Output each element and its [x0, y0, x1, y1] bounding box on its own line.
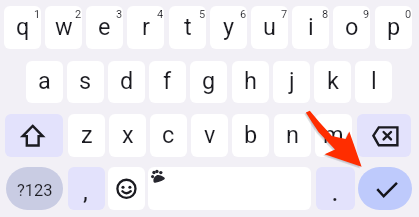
button[interactable]: c — [150, 114, 187, 157]
staticText: y — [223, 13, 235, 41]
staticText: . — [332, 182, 338, 205]
staticText: t — [184, 13, 192, 41]
button[interactable]: Space — [148, 167, 311, 210]
button[interactable]: u — [251, 6, 288, 49]
button[interactable]: Shift — [5, 114, 63, 157]
button[interactable]: h — [232, 61, 269, 103]
button[interactable]: s — [67, 61, 104, 103]
button[interactable]: Backspace — [357, 114, 411, 157]
button[interactable]: d — [108, 61, 145, 103]
staticText: l — [371, 67, 377, 95]
staticText: f — [163, 67, 172, 95]
button[interactable]: p — [375, 6, 412, 49]
button[interactable]: , — [68, 167, 105, 210]
staticText: 1 — [34, 8, 41, 21]
staticText: 3 — [116, 8, 123, 21]
staticText: h — [244, 67, 257, 95]
staticText: a — [38, 67, 51, 95]
staticText: x — [122, 121, 134, 149]
button[interactable]: Emoji — [108, 167, 145, 210]
staticText: j — [289, 67, 295, 95]
staticText: d — [120, 67, 134, 95]
staticText: z — [81, 121, 93, 149]
button[interactable]: ?123 — [6, 167, 63, 210]
button[interactable]: q — [4, 6, 41, 49]
staticText: b — [244, 121, 258, 149]
staticText: w — [55, 13, 73, 41]
button[interactable]: . — [316, 167, 355, 210]
staticText: , — [83, 180, 88, 203]
button[interactable]: k — [314, 61, 351, 103]
button[interactable]: a — [26, 61, 63, 103]
button[interactable]: t — [169, 6, 206, 49]
staticText: 5 — [199, 8, 206, 21]
staticText: 2 — [75, 8, 82, 21]
staticText: 4 — [157, 8, 164, 21]
button[interactable]: j — [273, 61, 310, 103]
staticText: 7 — [281, 8, 288, 21]
staticText: c — [162, 121, 175, 149]
button[interactable]: r — [127, 6, 164, 49]
staticText: 6 — [240, 8, 247, 21]
button[interactable]: f — [149, 61, 186, 103]
button[interactable]: g — [190, 61, 227, 103]
staticText: e — [98, 13, 111, 41]
button[interactable]: l — [355, 61, 392, 103]
staticText: s — [79, 67, 92, 95]
staticText: ?123 — [17, 181, 53, 200]
staticText: u — [263, 13, 276, 41]
button[interactable]: m — [315, 114, 352, 157]
staticText: q — [16, 13, 30, 41]
staticText: 0 — [405, 8, 412, 21]
button[interactable]: y — [210, 6, 247, 49]
button[interactable]: w — [45, 6, 82, 49]
staticText: 9 — [363, 8, 370, 21]
button[interactable]: e — [86, 6, 123, 49]
staticText: r — [142, 13, 150, 41]
button[interactable]: v — [191, 114, 228, 157]
button[interactable]: b — [232, 114, 269, 157]
staticText: n — [286, 121, 299, 149]
staticText: k — [327, 67, 339, 95]
button[interactable]: Enter — [358, 167, 412, 210]
staticText: m — [323, 121, 344, 149]
button[interactable]: x — [109, 114, 146, 157]
button[interactable]: n — [274, 114, 311, 157]
button[interactable]: z — [68, 114, 105, 157]
staticText: i — [308, 13, 314, 41]
staticText: 8 — [322, 8, 329, 21]
button[interactable]: i — [292, 6, 329, 49]
staticText: g — [202, 67, 216, 95]
staticText: v — [204, 121, 216, 149]
button[interactable]: o — [333, 6, 370, 49]
staticText: p — [387, 13, 401, 41]
staticText: o — [345, 13, 359, 41]
